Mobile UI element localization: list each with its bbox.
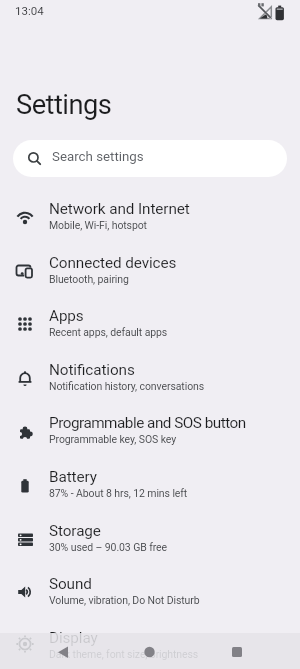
button[interactable] xyxy=(200,633,300,669)
button[interactable]: Sound xyxy=(0,565,300,619)
button[interactable]: Apps xyxy=(0,297,300,351)
staticText: Apps xyxy=(49,307,84,325)
button[interactable] xyxy=(100,633,200,669)
staticText: 30% used – 90.03 GB free xyxy=(49,541,168,553)
staticText: Sound xyxy=(49,575,92,593)
staticText: Programmable key, SOS key xyxy=(49,433,177,445)
button[interactable]: Connected devices xyxy=(0,244,300,297)
button[interactable]: Network and Internet xyxy=(0,190,300,244)
staticText: 87% - About 8 hrs, 12 mins left xyxy=(49,487,188,499)
staticText: Network and Internet xyxy=(49,200,190,218)
staticText: Programmable and SOS button xyxy=(49,414,246,432)
staticText: Display xyxy=(49,629,98,647)
staticText: Mobile, Wi-Fi, hotspot xyxy=(49,219,147,231)
staticText: Notifications xyxy=(49,361,135,379)
staticText: Search settings xyxy=(52,149,144,165)
staticText: Battery xyxy=(49,468,97,486)
button[interactable]: Storage xyxy=(0,512,300,565)
staticText: Dark theme, font size, brightness xyxy=(49,648,199,660)
staticText: 13:04 xyxy=(15,4,44,17)
staticText: Connected devices xyxy=(49,254,177,272)
staticText: Notification history, conversations xyxy=(49,380,205,392)
button[interactable]: Battery xyxy=(0,458,300,512)
staticText: Bluetooth, pairing xyxy=(49,273,129,285)
button[interactable]: Search settings xyxy=(13,140,287,177)
button[interactable] xyxy=(0,633,100,669)
button[interactable]: Programmable and SOS button xyxy=(0,404,300,458)
staticText: Settings xyxy=(16,89,112,121)
button[interactable]: Notifications xyxy=(0,351,300,404)
staticText: Volume, vibration, Do Not Disturb xyxy=(49,594,200,606)
staticText: Recent apps, default apps xyxy=(49,326,168,338)
button[interactable]: Display xyxy=(0,619,300,669)
staticText: Storage xyxy=(49,522,101,540)
